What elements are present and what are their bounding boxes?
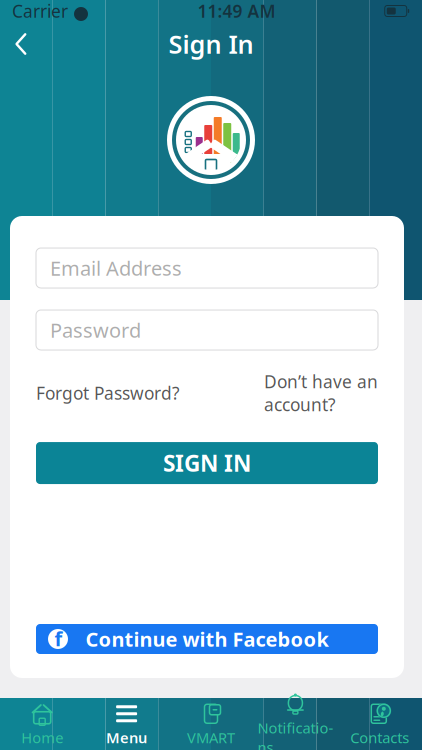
button[interactable]: VMART xyxy=(169,697,253,750)
button[interactable]: Don’t have an account? xyxy=(264,366,378,420)
staticText: 11:49 AM xyxy=(197,0,275,22)
staticText: VMART xyxy=(187,728,235,747)
staticText: Sign In xyxy=(168,27,253,61)
staticText: f xyxy=(54,625,62,652)
button[interactable]: SIGN IN xyxy=(36,442,378,484)
staticText: Notifications xyxy=(257,718,333,750)
button[interactable]: Menu xyxy=(84,697,169,750)
staticText: Menu xyxy=(106,728,147,747)
staticText: Don’t have an account? xyxy=(264,370,378,416)
button[interactable]: Continue with Facebook xyxy=(36,624,378,654)
staticText: Password xyxy=(50,317,141,343)
staticText: SIGN IN xyxy=(163,448,251,478)
button[interactable]: Contacts xyxy=(338,697,422,750)
button[interactable]: Forgot Password? xyxy=(36,377,180,408)
button[interactable]: Back xyxy=(0,23,42,65)
staticText: Contacts xyxy=(350,728,409,747)
staticText: Email Address xyxy=(50,255,182,281)
staticText: Continue with Facebook xyxy=(85,626,328,652)
button[interactable]: Notifications xyxy=(253,687,338,750)
staticText: Carrier xyxy=(12,0,68,22)
staticText: Home xyxy=(21,728,63,747)
staticText: Forgot Password? xyxy=(36,381,180,404)
button[interactable]: Home xyxy=(0,697,84,750)
